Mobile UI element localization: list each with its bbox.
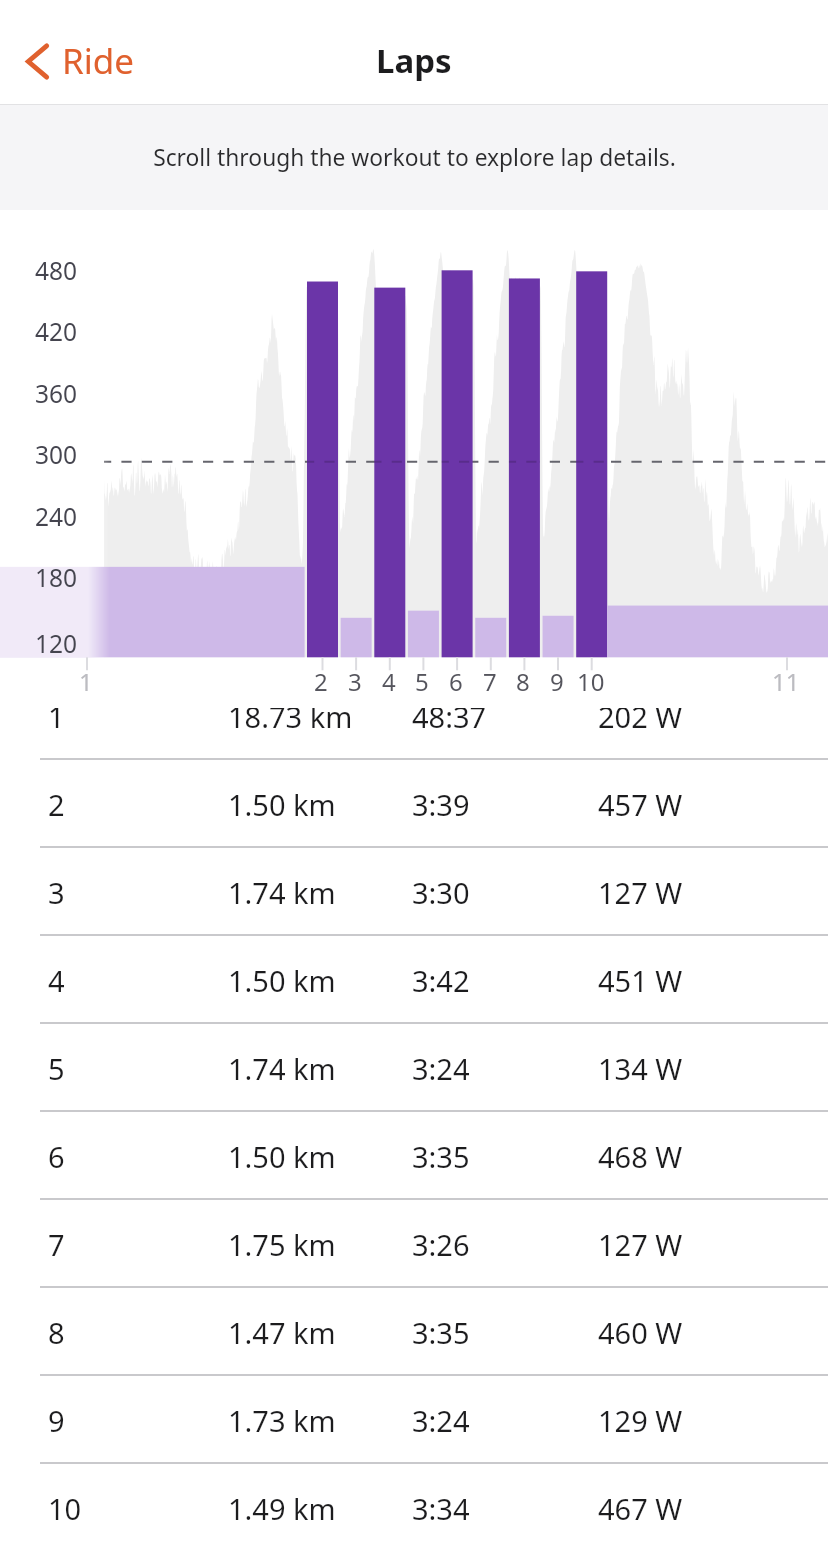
- staticText: 7: [483, 665, 497, 698]
- staticText: 4: [382, 665, 396, 698]
- staticText: 8: [48, 1313, 65, 1352]
- staticText: 10: [577, 665, 605, 698]
- staticText: 5: [415, 665, 429, 698]
- button[interactable]: 1: [0, 672, 828, 760]
- staticText: 202 W: [598, 697, 683, 736]
- other: Back: [26, 42, 49, 81]
- staticText: 1.50 km: [228, 961, 336, 1000]
- staticText: 180: [35, 561, 78, 594]
- staticText: 6: [48, 1137, 65, 1176]
- staticText: 1.47 km: [228, 1313, 336, 1352]
- staticText: 1.75 km: [228, 1225, 336, 1264]
- staticText: 240: [35, 500, 78, 533]
- button[interactable]: 5: [0, 1024, 828, 1112]
- staticText: 300: [35, 438, 78, 471]
- staticText: 3:35: [412, 1313, 470, 1352]
- staticText: 1.73 km: [228, 1401, 336, 1440]
- staticText: 2: [314, 665, 328, 698]
- staticText: 3:24: [412, 1049, 470, 1088]
- staticText: 480: [35, 254, 78, 287]
- staticText: 7: [48, 1225, 65, 1264]
- staticText: 2: [48, 785, 65, 824]
- button[interactable]: 4: [0, 936, 828, 1024]
- button[interactable]: 8: [0, 1288, 828, 1376]
- button[interactable]: 2: [0, 760, 828, 848]
- staticText: 1.74 km: [228, 873, 336, 912]
- staticText: 1.74 km: [228, 1049, 336, 1088]
- staticText: 1: [79, 665, 93, 698]
- staticText: 11: [772, 665, 800, 698]
- staticText: 3:30: [412, 873, 470, 912]
- staticText: 4: [48, 961, 65, 1000]
- staticText: 120: [35, 627, 78, 660]
- staticText: 3: [348, 665, 362, 698]
- staticText: 451 W: [598, 961, 683, 1000]
- staticText: Scroll through the workout to explore la…: [153, 142, 676, 173]
- staticText: Laps: [376, 38, 452, 83]
- staticText: 127 W: [598, 873, 683, 912]
- staticText: 1.50 km: [228, 1137, 336, 1176]
- staticText: 3:39: [412, 785, 470, 824]
- staticText: 3:34: [412, 1489, 470, 1528]
- staticText: 127 W: [598, 1225, 683, 1264]
- staticText: 468 W: [598, 1137, 683, 1176]
- button[interactable]: 10: [0, 1464, 828, 1544]
- staticText: 3: [48, 873, 65, 912]
- staticText: 1.49 km: [228, 1489, 336, 1528]
- staticText: 3:42: [412, 961, 470, 1000]
- staticText: 18.73 km: [228, 697, 353, 736]
- staticText: 8: [516, 665, 530, 698]
- staticText: 9: [48, 1401, 65, 1440]
- staticText: 3:24: [412, 1401, 470, 1440]
- staticText: 420: [35, 315, 78, 348]
- staticText: 457 W: [598, 785, 683, 824]
- staticText: 1.50 km: [228, 785, 336, 824]
- button[interactable]: Back: [26, 37, 135, 85]
- staticText: Ride: [62, 37, 135, 85]
- staticText: 6: [449, 665, 463, 698]
- staticText: 1: [48, 697, 65, 736]
- staticText: 3:35: [412, 1137, 470, 1176]
- staticText: 48:37: [412, 697, 487, 736]
- staticText: 360: [35, 377, 78, 410]
- staticText: 467 W: [598, 1489, 683, 1528]
- staticText: 460 W: [598, 1313, 683, 1352]
- button[interactable]: 7: [0, 1200, 828, 1288]
- staticText: 9: [550, 665, 564, 698]
- button[interactable]: 6: [0, 1112, 828, 1200]
- staticText: 10: [48, 1489, 82, 1528]
- button[interactable]: 9: [0, 1376, 828, 1464]
- staticText: 129 W: [598, 1401, 683, 1440]
- staticText: 5: [48, 1049, 65, 1088]
- button[interactable]: 3: [0, 848, 828, 936]
- staticText: 3:26: [412, 1225, 470, 1264]
- staticText: 134 W: [598, 1049, 683, 1088]
